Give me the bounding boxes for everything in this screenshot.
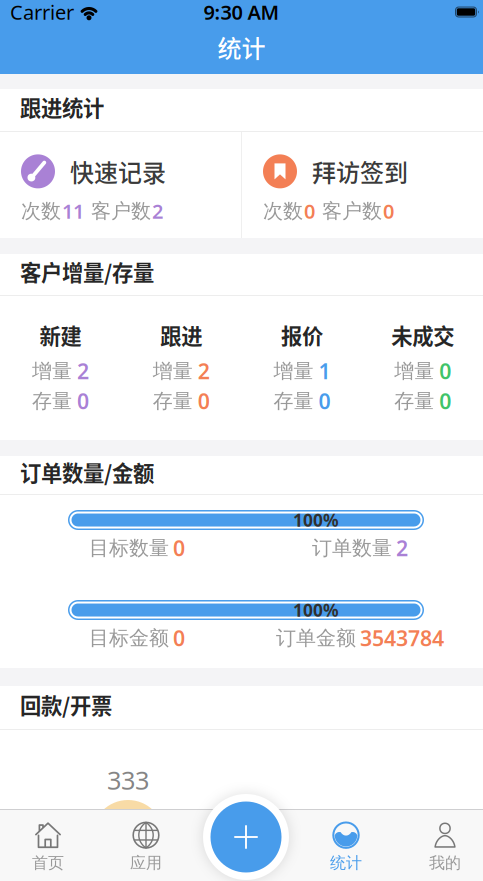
- staticText: 回款/开票: [20, 689, 112, 720]
- staticText: 统计: [330, 853, 362, 873]
- staticText: 2: [152, 198, 163, 224]
- button[interactable]: 添加: [203, 794, 289, 880]
- staticText: Carrier: [10, 0, 74, 25]
- staticText: 统计: [217, 30, 265, 64]
- staticText: 2: [77, 357, 89, 385]
- staticText: 首页: [32, 853, 64, 873]
- staticText: 拜访签到: [312, 154, 408, 189]
- button[interactable]: 应用: [111, 822, 181, 872]
- staticText: 0: [173, 624, 185, 652]
- button[interactable]: 拜访签到: [242, 132, 483, 238]
- staticText: 存量: [273, 389, 313, 413]
- staticText: 存量: [394, 389, 434, 413]
- staticText: 100%: [293, 598, 339, 621]
- staticText: 报价: [281, 320, 323, 350]
- staticText: 0: [173, 534, 185, 562]
- staticText: 2: [396, 534, 408, 562]
- staticText: 增量: [153, 359, 193, 383]
- staticText: 0: [383, 198, 394, 224]
- button[interactable]: 首页: [13, 822, 83, 872]
- staticText: 0: [304, 198, 315, 224]
- staticText: 0: [318, 387, 330, 415]
- staticText: 存量: [153, 389, 193, 413]
- staticText: 订单数量: [312, 536, 392, 560]
- staticText: 应用: [130, 853, 162, 873]
- staticText: 0: [439, 357, 451, 385]
- staticText: 次数: [21, 199, 61, 223]
- staticText: 1: [318, 357, 330, 385]
- staticText: 订单数量/金额: [20, 457, 154, 487]
- staticText: 快速记录: [70, 154, 166, 189]
- staticText: 跟进统计: [20, 92, 104, 122]
- staticText: 11: [62, 198, 84, 224]
- staticText: 0: [198, 387, 210, 415]
- staticText: 增量: [32, 359, 72, 383]
- staticText: 目标金额: [89, 626, 169, 650]
- staticText: 次数: [263, 199, 303, 223]
- button[interactable]: 统计: [311, 822, 381, 872]
- staticText: 3543784: [360, 624, 444, 652]
- staticText: 客户数: [85, 199, 151, 223]
- staticText: 客户增量/存量: [20, 256, 154, 287]
- staticText: 订单金额: [276, 626, 356, 650]
- staticText: 100%: [293, 508, 339, 531]
- staticText: 0: [77, 387, 89, 415]
- button[interactable]: 我的: [410, 822, 480, 872]
- staticText: 我的: [429, 853, 461, 873]
- staticText: 存量: [32, 389, 72, 413]
- staticText: 2: [198, 357, 210, 385]
- button[interactable]: 快速记录: [0, 132, 241, 238]
- staticText: 目标数量: [89, 536, 169, 560]
- staticText: 增量: [394, 359, 434, 383]
- staticText: 客户数: [316, 199, 382, 223]
- staticText: 未成交: [391, 320, 454, 350]
- staticText: 跟进: [160, 320, 202, 350]
- staticText: 0: [439, 387, 451, 415]
- staticText: 333: [107, 763, 149, 797]
- staticText: 9:30 AM: [203, 0, 279, 25]
- staticText: 新建: [39, 320, 81, 350]
- staticText: 增量: [273, 359, 313, 383]
